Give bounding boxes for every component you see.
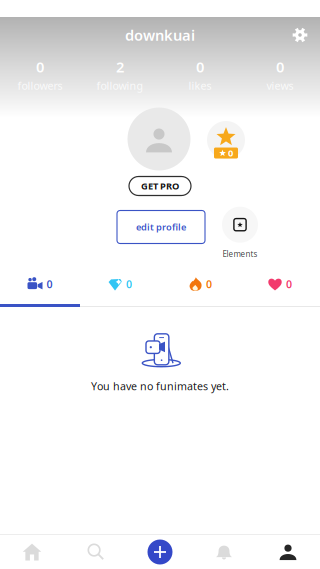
- button[interactable]: Search: [64, 535, 128, 569]
- button[interactable]: edit profile: [117, 210, 205, 243]
- staticText: 0: [36, 57, 44, 76]
- button[interactable]: GET PRO: [129, 176, 191, 195]
- staticText: downkuai: [125, 25, 195, 45]
- button[interactable]: 0: [240, 270, 320, 307]
- button[interactable]: 0: [0, 270, 80, 307]
- staticText: 0: [196, 57, 204, 76]
- button[interactable]: 0: [0, 57, 80, 93]
- button[interactable]: 0: [160, 270, 240, 307]
- button[interactable]: 0: [160, 57, 240, 93]
- staticText: 0: [286, 277, 292, 291]
- staticText: You have no funimates yet.: [91, 379, 229, 393]
- button[interactable]: Notifications: [192, 535, 256, 569]
- button[interactable]: Create: [128, 535, 192, 569]
- staticText: 0: [46, 277, 52, 291]
- button[interactable]: Home: [0, 535, 64, 569]
- staticText: GET PRO: [141, 180, 179, 192]
- staticText: edit profile: [136, 221, 186, 233]
- staticText: likes: [188, 78, 211, 93]
- staticText: 0: [206, 277, 212, 291]
- staticText: 0: [276, 57, 284, 76]
- button[interactable]: 2: [80, 57, 160, 93]
- button[interactable]: Elements: [222, 207, 258, 259]
- staticText: 0: [126, 277, 132, 291]
- button[interactable]: 0: [240, 57, 320, 93]
- button[interactable]: Settings: [283, 20, 317, 50]
- staticText: views: [266, 78, 293, 93]
- staticText: 0: [228, 147, 233, 159]
- staticText: Elements: [222, 249, 257, 259]
- staticText: following: [96, 78, 143, 93]
- button[interactable]: 0: [80, 270, 160, 307]
- button[interactable]: Profile: [256, 535, 320, 569]
- staticText: followers: [17, 78, 62, 93]
- staticText: 2: [116, 57, 124, 76]
